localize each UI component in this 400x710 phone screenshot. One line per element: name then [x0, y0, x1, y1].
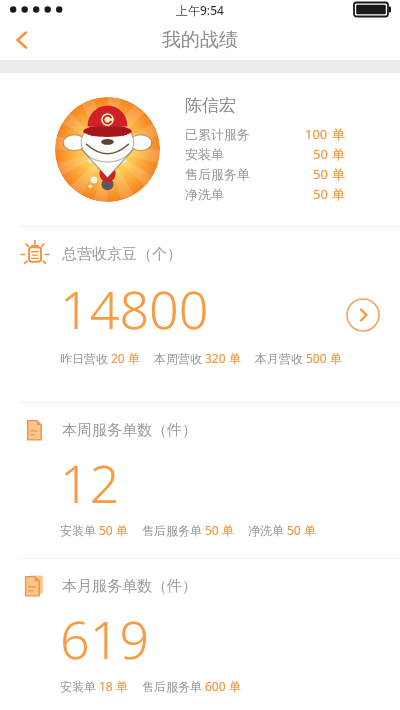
staticText: 售后服务单: [142, 679, 202, 694]
button[interactable]: 本周服务单数（件）: [0, 403, 400, 558]
staticText: 单: [116, 523, 128, 538]
staticText: 单: [332, 186, 345, 202]
staticText: 50: [99, 522, 113, 538]
staticText: 12: [60, 447, 120, 518]
staticText: 单: [332, 146, 345, 162]
staticText: 单: [116, 679, 128, 694]
staticText: 安装单: [60, 679, 96, 694]
staticText: 净洗单: [185, 186, 224, 202]
staticText: 我的战绩: [162, 28, 238, 52]
staticText: 320: [205, 350, 226, 366]
staticText: 上午9:54: [176, 2, 224, 18]
staticText: 安装单: [185, 146, 224, 162]
staticText: 600: [205, 678, 226, 694]
button[interactable]: 总营收京豆（个）: [0, 227, 400, 402]
staticText: 本周服务单数（件）: [62, 421, 197, 440]
staticText: 本周营收: [154, 351, 202, 366]
staticText: 本月服务单数（件）: [62, 577, 197, 596]
staticText: 售后服务单: [185, 166, 250, 182]
staticText: 昨日营收: [60, 351, 108, 366]
staticText: 售后服务单: [142, 523, 202, 538]
staticText: 净洗单: [248, 523, 284, 538]
staticText: 单: [304, 523, 316, 538]
staticText: 单: [332, 126, 345, 142]
staticText: 单: [330, 351, 342, 366]
staticText: 50: [313, 185, 328, 203]
staticText: 50: [313, 165, 328, 183]
staticText: 18: [99, 678, 113, 694]
staticText: 20: [111, 350, 125, 366]
staticText: 单: [332, 166, 345, 182]
button[interactable]: 查看详情: [346, 298, 380, 332]
staticText: 500: [306, 350, 327, 366]
staticText: 100: [305, 125, 328, 143]
staticText: 619: [60, 603, 150, 674]
staticText: 本月营收: [255, 351, 303, 366]
staticText: 总营收京豆（个）: [62, 245, 182, 264]
staticText: 安装单: [60, 523, 96, 538]
staticText: 单: [229, 351, 241, 366]
staticText: 14800: [60, 273, 209, 344]
staticText: 陈信宏: [185, 95, 236, 116]
staticText: 50: [205, 522, 219, 538]
staticText: 已累计服务: [185, 126, 250, 142]
staticText: 单: [222, 523, 234, 538]
button[interactable]: Back: [0, 20, 44, 60]
staticText: 50: [287, 522, 301, 538]
staticText: 50: [313, 145, 328, 163]
button[interactable]: 本月服务单数（件）: [0, 559, 400, 710]
staticText: 单: [229, 679, 241, 694]
staticText: 单: [128, 351, 140, 366]
button[interactable]: 陈信宏: [0, 73, 400, 226]
